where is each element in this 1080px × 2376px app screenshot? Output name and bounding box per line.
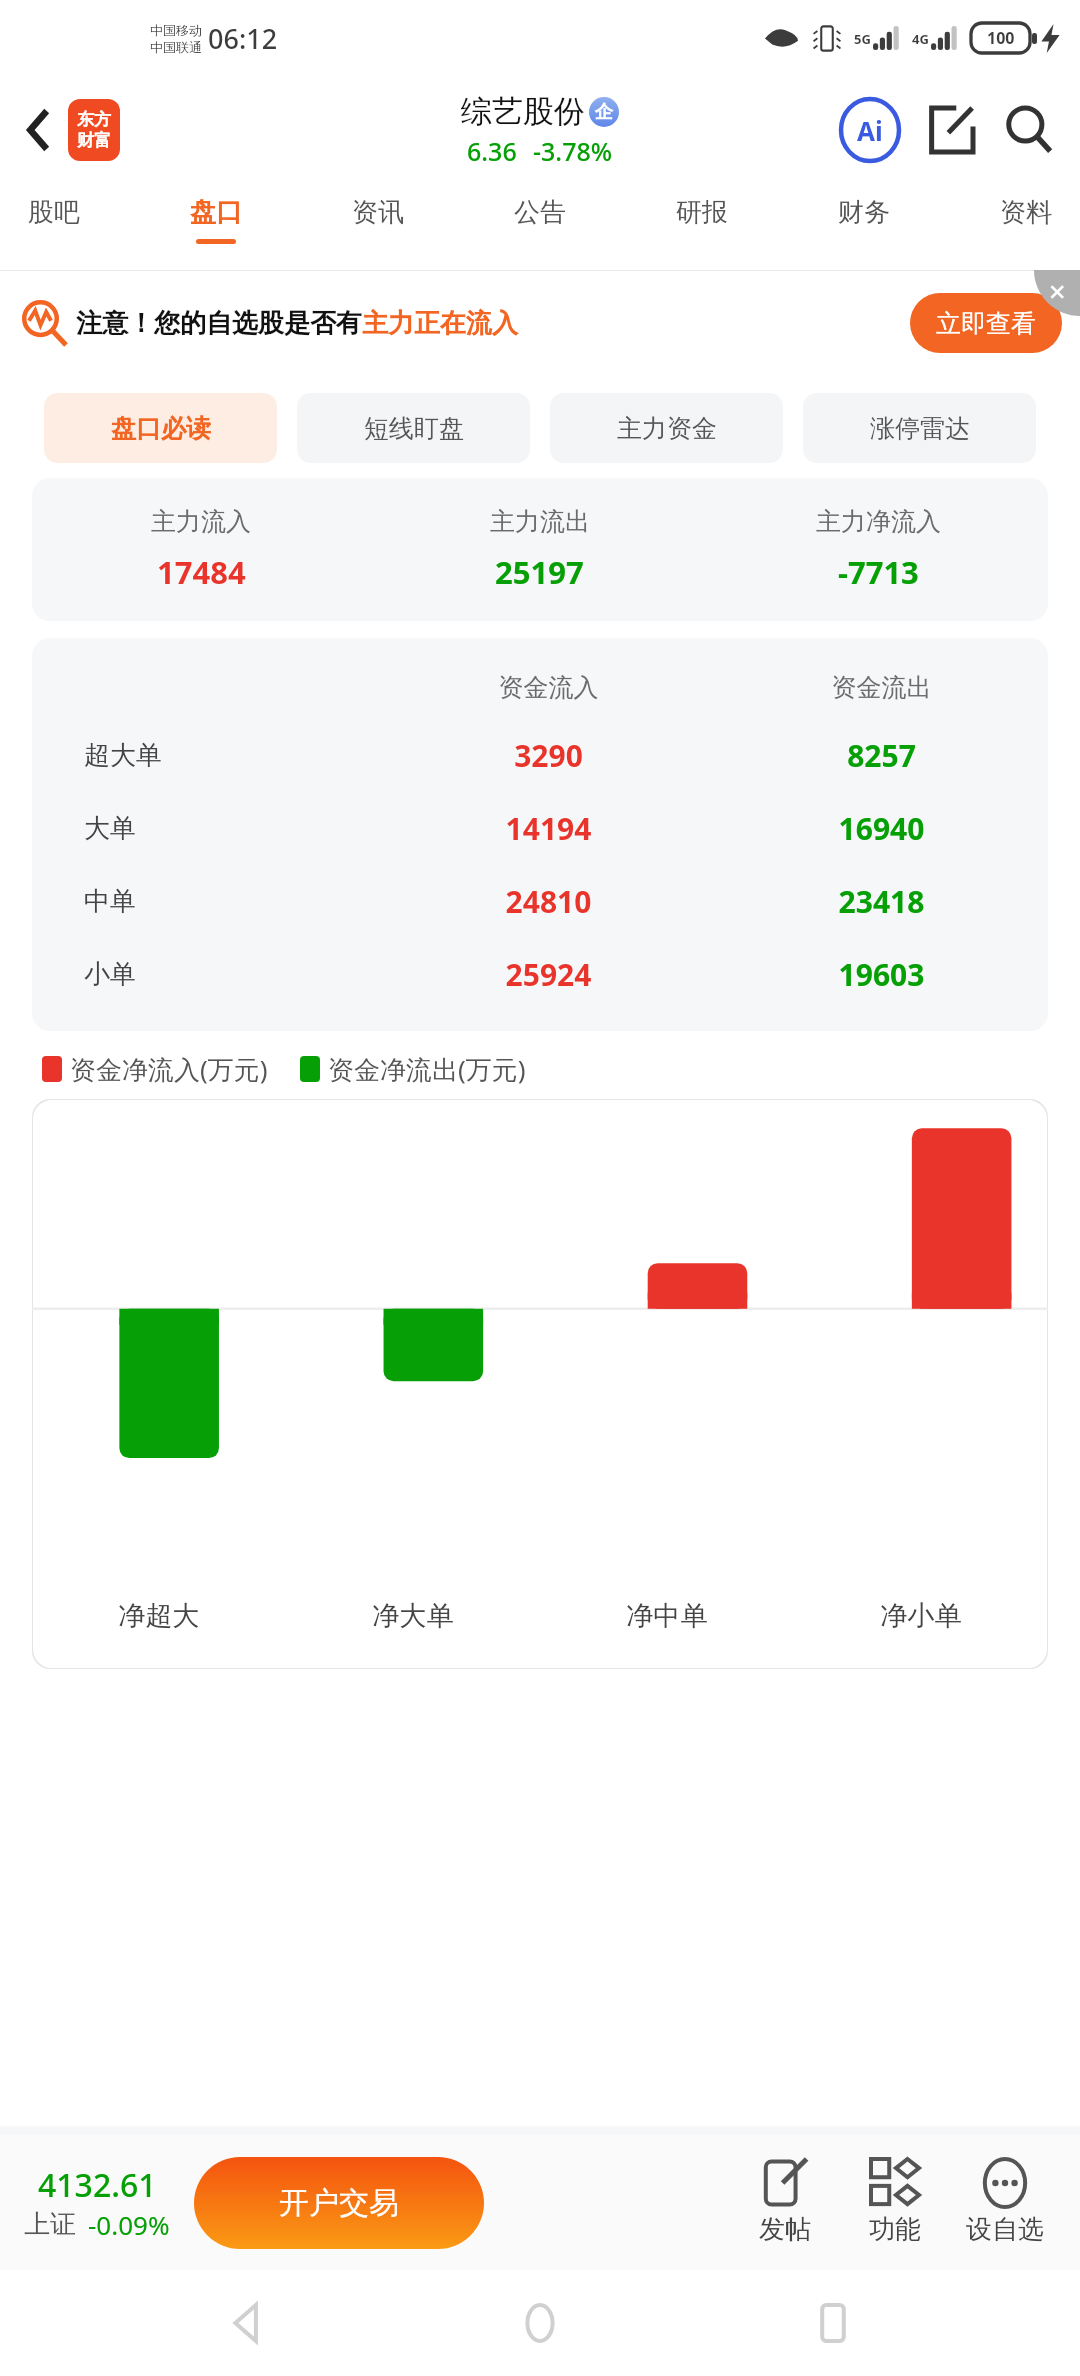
staticText: Ai: [857, 113, 883, 148]
button[interactable]: 资料: [994, 184, 1058, 256]
staticText: 净大单: [286, 1599, 540, 1633]
staticText: 14194: [382, 808, 715, 849]
button[interactable]: 主力流入: [32, 478, 1048, 621]
staticText: 资料: [1000, 196, 1052, 229]
button[interactable]: 短线盯盘: [297, 393, 530, 463]
staticText: 中国联通: [150, 39, 202, 55]
staticText: 超大单: [84, 739, 162, 772]
staticText: 大单: [84, 812, 136, 845]
button[interactable]: 设自选: [950, 2153, 1060, 2252]
staticText: -0.09%: [88, 2207, 170, 2242]
staticText: -7713: [838, 551, 919, 593]
staticText: 资金流入: [382, 672, 715, 703]
staticText: 资讯: [352, 196, 404, 229]
staticText: 上证: [24, 2208, 76, 2241]
staticText: 中国移动: [150, 22, 202, 38]
staticText: 25924: [382, 954, 715, 995]
staticText: 3290: [382, 735, 715, 776]
staticText: 设自选: [966, 2213, 1044, 2246]
button[interactable]: AI assistant: [838, 98, 902, 162]
staticText: 17484: [157, 551, 246, 593]
button[interactable]: Search: [998, 99, 1060, 161]
button[interactable]: 主力资金: [550, 393, 783, 463]
staticText: 100: [987, 27, 1015, 49]
button[interactable]: 研报: [670, 184, 734, 256]
staticText: 短线盯盘: [364, 413, 464, 444]
staticText: -3.78%: [533, 134, 613, 168]
staticText: 16940: [715, 808, 1048, 849]
staticText: 资金净流入(万元): [70, 1051, 268, 1087]
staticText: 财富: [77, 130, 111, 151]
button[interactable]: 东方财富: [68, 99, 120, 161]
button[interactable]: 资讯: [346, 184, 410, 256]
staticText: 主力流入: [151, 506, 251, 537]
staticText: 中单: [84, 885, 136, 918]
button[interactable]: 盘口必读: [44, 393, 277, 463]
staticText: 涨停雷达: [870, 413, 970, 444]
staticText: 发帖: [759, 2213, 811, 2246]
staticText: 盘口必读: [111, 413, 211, 444]
staticText: 企: [595, 101, 613, 124]
button[interactable]: 盘口: [184, 184, 248, 256]
button[interactable]: 功能: [840, 2153, 950, 2252]
button[interactable]: 股吧: [22, 184, 86, 256]
staticText: 19603: [715, 954, 1048, 995]
button[interactable]: Back: [14, 105, 64, 155]
button[interactable]: 财务: [832, 184, 896, 256]
staticText: 综艺股份: [461, 92, 585, 131]
staticText: 功能: [869, 2213, 921, 2246]
staticText: 23418: [715, 881, 1048, 922]
button[interactable]: 涨停雷达: [803, 393, 1036, 463]
staticText: 25197: [495, 551, 584, 593]
staticText: 4132.61: [38, 2163, 157, 2207]
staticText: 净超大: [32, 1599, 286, 1633]
staticText: 4G: [912, 30, 929, 48]
staticText: 主力流出: [490, 506, 590, 537]
staticText: 主力正在流入: [362, 307, 518, 340]
button[interactable]: 资金流入: [32, 638, 1048, 1031]
button[interactable]: 发帖: [730, 2153, 840, 2252]
staticText: 5G: [854, 30, 871, 48]
staticText: 开户交易: [279, 2184, 399, 2222]
staticText: 主力净流入: [816, 506, 941, 537]
button[interactable]: 立即查看: [910, 293, 1062, 353]
staticText: 24810: [382, 881, 715, 922]
staticText: 公告: [514, 196, 566, 229]
button[interactable]: 开户交易: [194, 2157, 484, 2249]
button[interactable]: 注意！您的自选股是否有: [22, 293, 1062, 353]
button[interactable]: 净超大: [32, 1099, 1048, 1669]
button[interactable]: Share: [920, 99, 982, 161]
staticText: 净中单: [540, 1599, 794, 1633]
button[interactable]: 4132.61: [20, 2159, 174, 2246]
staticText: 06:12: [208, 20, 278, 57]
button[interactable]: 公告: [508, 184, 572, 256]
staticText: 盘口: [190, 196, 242, 229]
button[interactable]: Close: [1034, 270, 1080, 316]
staticText: 注意！您的自选股是否有: [76, 307, 362, 340]
button[interactable]: Recents: [788, 2278, 878, 2368]
staticText: 研报: [676, 196, 728, 229]
staticText: ✕: [1048, 280, 1067, 306]
staticText: 立即查看: [936, 308, 1036, 339]
staticText: 6.36: [467, 134, 517, 168]
staticText: 股吧: [28, 196, 80, 229]
button[interactable]: Home: [495, 2278, 585, 2368]
staticText: 8257: [715, 735, 1048, 776]
staticText: 东方: [77, 109, 111, 130]
button[interactable]: Back: [203, 2278, 293, 2368]
staticText: 资金净流出(万元): [328, 1051, 526, 1087]
staticText: 净小单: [794, 1599, 1048, 1633]
staticText: 财务: [838, 196, 890, 229]
staticText: 小单: [84, 958, 136, 991]
staticText: 资金流出: [715, 672, 1048, 703]
staticText: 主力资金: [617, 413, 717, 444]
